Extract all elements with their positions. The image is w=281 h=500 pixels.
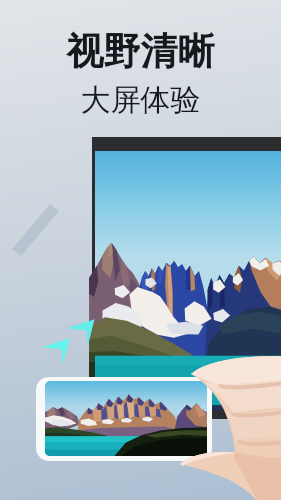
staticText: 大屏体验: [0, 81, 281, 119]
staticText: 视野清晰: [0, 28, 281, 75]
